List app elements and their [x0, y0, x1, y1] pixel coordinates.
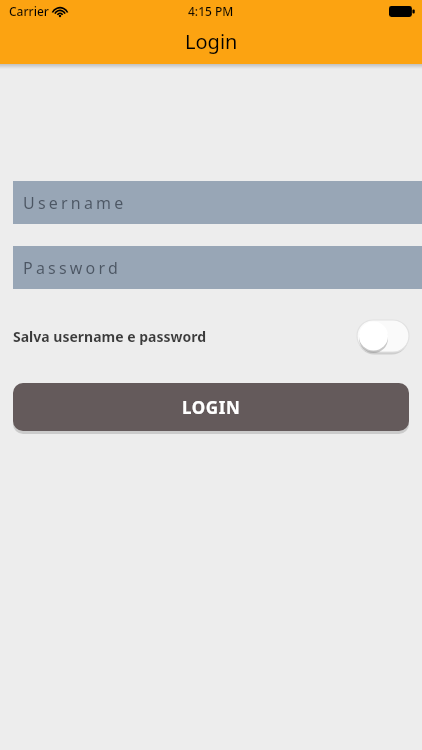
- staticText: LOGIN: [182, 396, 241, 419]
- button[interactable]: Password: [13, 246, 422, 289]
- button[interactable]: Username: [13, 181, 422, 224]
- staticText: Password: [23, 257, 121, 279]
- staticText: Login: [185, 28, 238, 55]
- staticText: 4:15 PM: [188, 3, 234, 19]
- button[interactable]: Salva username e password: [357, 320, 409, 352]
- staticText: Salva username e password: [13, 327, 207, 346]
- staticText: Username: [23, 192, 127, 214]
- staticText: Carrier: [9, 3, 49, 19]
- button[interactable]: LOGIN: [13, 383, 409, 431]
